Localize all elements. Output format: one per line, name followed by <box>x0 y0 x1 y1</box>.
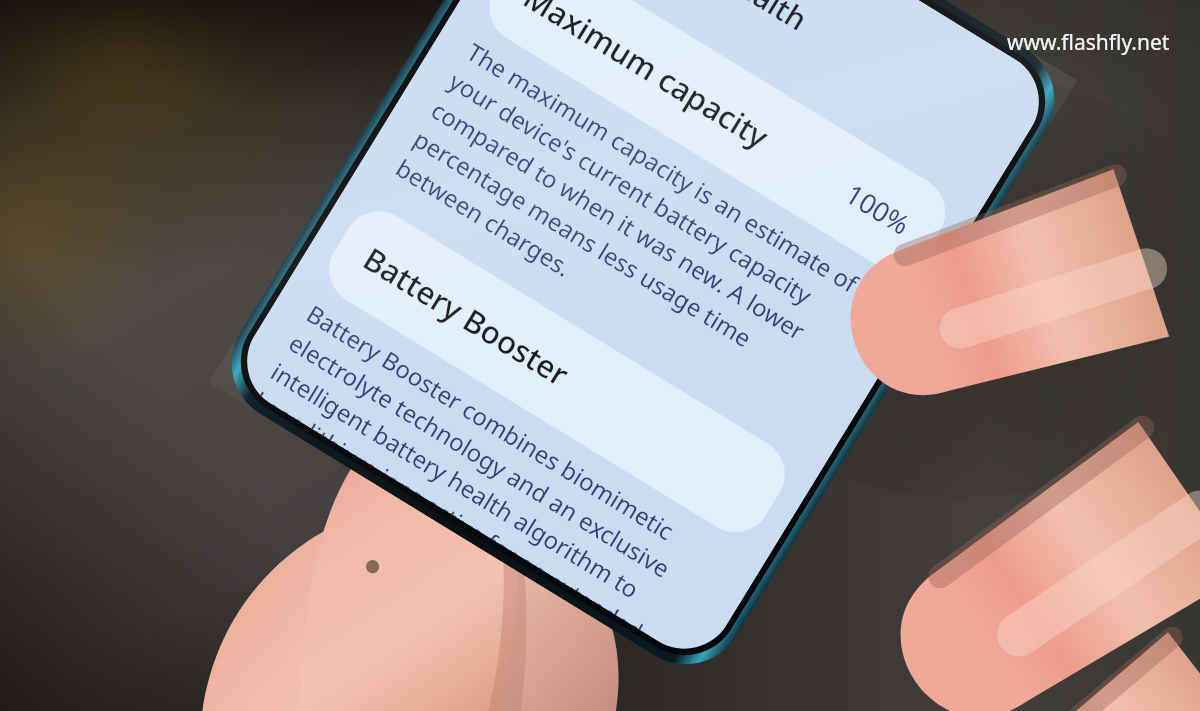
staticText: Battery Booster <box>356 237 577 395</box>
staticText: The maximum capacity is an estimate of y… <box>390 35 893 433</box>
staticText: Maximum capacity <box>516 0 777 158</box>
staticText: Battery health <box>619 0 815 39</box>
button[interactable]: Maximum capacity <box>476 0 959 284</box>
button[interactable]: Battery Booster <box>316 198 798 546</box>
staticText: 100% <box>839 175 917 243</box>
staticText: Battery Booster combines biomimetic elec… <box>257 297 732 650</box>
staticText: www.flashfly.net <box>1007 28 1170 57</box>
